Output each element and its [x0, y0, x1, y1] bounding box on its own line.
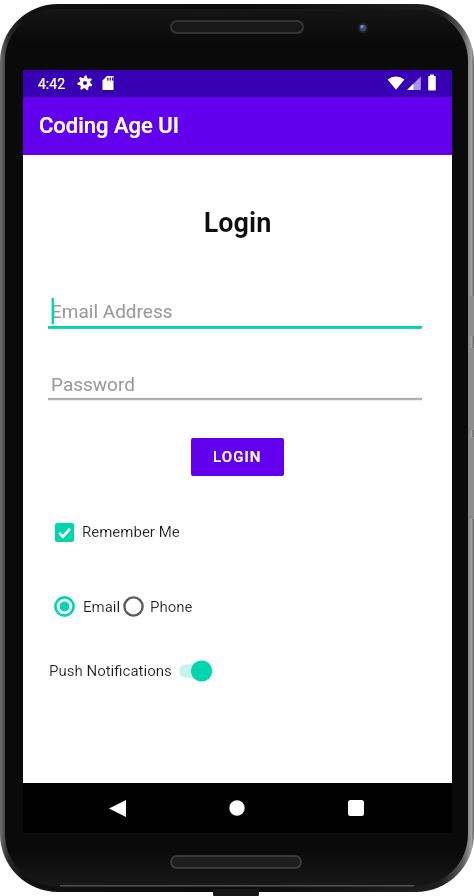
staticText: Push Notifications: [49, 662, 172, 680]
staticText: Remember Me: [82, 523, 180, 541]
button[interactable]: LOGIN: [191, 438, 284, 476]
staticText: Email: [83, 598, 121, 616]
button[interactable]: Home: [215, 786, 259, 830]
button[interactable]: Email: [54, 596, 121, 617]
button[interactable]: Phone: [123, 596, 193, 617]
staticText: 4:42: [38, 76, 65, 92]
staticText: Email Address: [51, 300, 173, 322]
staticText: Password: [51, 373, 135, 395]
button[interactable]: Push Notifications: [49, 656, 213, 686]
staticText: LOGIN: [213, 448, 262, 466]
button[interactable]: Recent apps: [334, 786, 378, 830]
staticText: Login: [23, 207, 452, 239]
staticText: Coding Age UI: [39, 113, 179, 139]
button[interactable]: Remember Me: [55, 517, 180, 547]
button[interactable]: Password: [48, 366, 422, 402]
button[interactable]: Email Address: [48, 293, 422, 329]
button[interactable]: Back: [95, 786, 139, 830]
staticText: Phone: [150, 598, 193, 616]
